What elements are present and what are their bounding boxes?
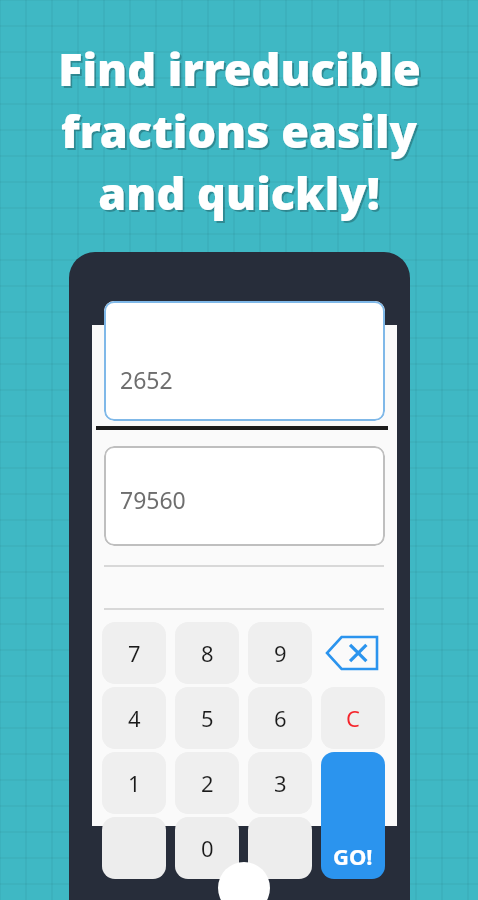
- button[interactable]: 6: [248, 687, 312, 749]
- button[interactable]: Backspace: [319, 622, 385, 684]
- button[interactable]: GO!: [321, 752, 385, 879]
- button[interactable]: 1: [102, 752, 166, 814]
- button[interactable]: [102, 817, 166, 879]
- button[interactable]: 0: [175, 817, 239, 879]
- staticText: 9: [274, 638, 287, 668]
- staticText: 2: [201, 768, 214, 798]
- button[interactable]: 79560: [104, 446, 385, 546]
- staticText: Find irreducible: [58, 38, 421, 99]
- button[interactable]: [248, 817, 312, 879]
- staticText: 4: [128, 703, 141, 733]
- button[interactable]: 8: [175, 622, 239, 684]
- button[interactable]: C: [321, 687, 385, 749]
- button[interactable]: Home: [218, 862, 270, 900]
- staticText: 3: [274, 768, 287, 798]
- staticText: 8: [201, 638, 214, 668]
- staticText: 0: [201, 833, 214, 863]
- staticText: 79560: [120, 484, 186, 515]
- staticText: C: [346, 703, 360, 733]
- staticText: 2652: [120, 364, 173, 395]
- button[interactable]: 4: [102, 687, 166, 749]
- staticText: fractions easily: [63, 102, 419, 163]
- staticText: 7: [128, 638, 141, 668]
- staticText: and quickly!: [98, 162, 380, 223]
- staticText: 6: [274, 703, 287, 733]
- staticText: and quickly!: [100, 164, 382, 225]
- button[interactable]: 3: [248, 752, 312, 814]
- button[interactable]: 9: [248, 622, 312, 684]
- button[interactable]: 7: [102, 622, 166, 684]
- staticText: Find irreducible: [60, 40, 423, 101]
- staticText: 1: [128, 768, 141, 798]
- staticText: GO!: [333, 841, 373, 871]
- button[interactable]: 2652: [104, 301, 385, 421]
- staticText: 5: [201, 703, 214, 733]
- button[interactable]: 5: [175, 687, 239, 749]
- staticText: fractions easily: [61, 100, 417, 161]
- button[interactable]: 2: [175, 752, 239, 814]
